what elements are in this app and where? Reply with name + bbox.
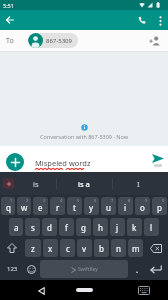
staticText: To bbox=[6, 36, 14, 46]
staticText: I bbox=[137, 179, 140, 189]
button[interactable] bbox=[3, 178, 14, 189]
staticText: b bbox=[99, 243, 104, 254]
button[interactable]: g bbox=[76, 218, 91, 236]
staticText: . bbox=[136, 264, 139, 275]
staticText: g bbox=[81, 222, 86, 233]
button[interactable] bbox=[134, 12, 150, 28]
button[interactable] bbox=[24, 260, 38, 278]
staticText: d bbox=[47, 222, 52, 233]
button[interactable]: u bbox=[101, 197, 116, 215]
staticText: l bbox=[150, 222, 153, 233]
staticText: 4 bbox=[60, 198, 63, 203]
staticText: f bbox=[65, 222, 68, 233]
button[interactable]: . bbox=[130, 260, 144, 278]
button[interactable] bbox=[6, 153, 24, 171]
button[interactable] bbox=[2, 12, 18, 28]
button[interactable]: p bbox=[152, 197, 167, 215]
staticText: is a bbox=[78, 179, 90, 189]
staticText: SMS bbox=[154, 163, 163, 168]
button[interactable]: 123 bbox=[2, 260, 22, 278]
staticText: v bbox=[82, 243, 87, 254]
button[interactable] bbox=[148, 34, 162, 48]
button[interactable]: SMS bbox=[152, 154, 164, 168]
button[interactable]: n bbox=[111, 239, 126, 257]
staticText: p bbox=[157, 202, 162, 213]
staticText: m bbox=[132, 243, 140, 254]
staticText: 6 bbox=[94, 198, 97, 203]
button[interactable]: q bbox=[1, 197, 15, 215]
button[interactable]: o bbox=[135, 197, 150, 215]
button[interactable]: i bbox=[118, 197, 133, 215]
button[interactable] bbox=[76, 288, 93, 292]
button[interactable]: z bbox=[25, 239, 41, 257]
staticText: x bbox=[48, 243, 53, 254]
button[interactable] bbox=[34, 284, 48, 298]
button[interactable]: l bbox=[144, 218, 159, 236]
button[interactable]: b bbox=[94, 239, 109, 257]
staticText: k bbox=[132, 222, 137, 233]
staticText: u bbox=[106, 202, 111, 213]
button[interactable]: v bbox=[77, 239, 92, 257]
staticText: c bbox=[66, 243, 70, 254]
staticText: 0 bbox=[162, 198, 165, 203]
staticText: 123 bbox=[7, 265, 18, 273]
button[interactable]: j bbox=[110, 218, 125, 236]
button[interactable]: is a bbox=[57, 172, 111, 195]
staticText: is bbox=[33, 179, 39, 189]
button[interactable]: s bbox=[25, 218, 40, 236]
staticText: j bbox=[116, 222, 119, 233]
staticText: 3 bbox=[43, 198, 46, 203]
button[interactable]: e bbox=[33, 197, 48, 215]
staticText: o bbox=[140, 202, 145, 213]
staticText: t bbox=[73, 202, 76, 213]
button[interactable]: 867-5309 bbox=[28, 33, 78, 48]
button[interactable]: c bbox=[60, 239, 75, 257]
staticText: y bbox=[89, 202, 94, 213]
button[interactable] bbox=[154, 14, 167, 27]
staticText: 7 bbox=[111, 198, 114, 203]
staticText: q bbox=[6, 202, 11, 213]
staticText: r bbox=[56, 202, 60, 213]
button[interactable]: d bbox=[42, 218, 57, 236]
button[interactable]: k bbox=[127, 218, 142, 236]
button[interactable]: SwiftKey bbox=[40, 260, 128, 278]
button[interactable] bbox=[147, 260, 165, 278]
staticText: 9 bbox=[145, 198, 148, 203]
staticText: i bbox=[124, 202, 127, 213]
staticText: 867-5309 bbox=[46, 37, 72, 45]
staticText: 5 bbox=[77, 198, 80, 203]
button[interactable] bbox=[146, 239, 166, 257]
staticText: h bbox=[98, 222, 103, 233]
staticText: 2 bbox=[26, 198, 29, 203]
button[interactable]: y bbox=[84, 197, 99, 215]
staticText: a bbox=[14, 222, 19, 233]
button[interactable]: f bbox=[59, 218, 74, 236]
button[interactable]: x bbox=[43, 239, 58, 257]
button[interactable]: I bbox=[120, 172, 156, 195]
button[interactable]: w bbox=[17, 197, 31, 215]
button[interactable]: m bbox=[128, 239, 143, 257]
button[interactable] bbox=[136, 284, 152, 296]
button[interactable]: a bbox=[9, 218, 23, 236]
button[interactable]: is bbox=[17, 172, 55, 195]
staticText: n bbox=[116, 243, 121, 254]
staticText: e bbox=[38, 202, 43, 213]
staticText: s bbox=[31, 222, 35, 233]
button[interactable]: t bbox=[67, 197, 82, 215]
staticText: z bbox=[31, 243, 35, 254]
staticText: SwiftKey bbox=[78, 266, 98, 273]
staticText: 8 bbox=[128, 198, 131, 203]
button[interactable]: r bbox=[50, 197, 65, 215]
staticText: w bbox=[21, 202, 28, 213]
button[interactable]: h bbox=[93, 218, 108, 236]
staticText: 5:51 bbox=[3, 2, 14, 9]
staticText: Mispeled wordz bbox=[35, 158, 91, 168]
staticText: 1 bbox=[10, 198, 13, 203]
staticText: Conversation with 867-5309 · Now bbox=[40, 133, 129, 140]
button[interactable] bbox=[2, 239, 22, 257]
